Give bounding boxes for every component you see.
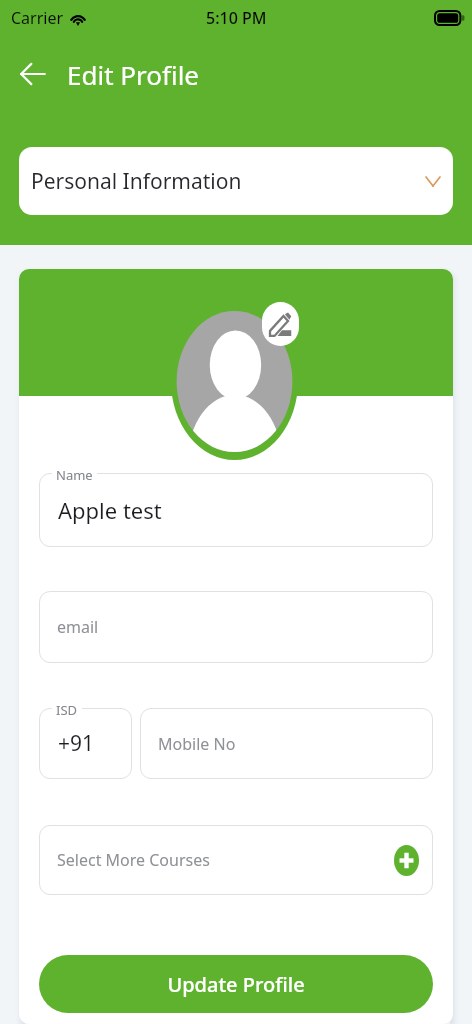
staticText: Personal Information (31, 167, 242, 196)
staticText: Edit Profile (67, 57, 200, 92)
staticText: +91 (58, 729, 95, 758)
button[interactable]: Personal Information (19, 147, 453, 215)
staticText: ISD (56, 701, 78, 719)
button[interactable]: Update Profile (39, 955, 433, 1013)
button[interactable]: Edit profile photo (262, 302, 299, 346)
button[interactable]: Apple test (39, 473, 433, 547)
button[interactable]: Back (9, 50, 57, 98)
button[interactable]: Mobile No (140, 708, 433, 779)
staticText: Apple test (58, 495, 162, 525)
staticText: Mobile No (158, 733, 236, 755)
button[interactable]: Select More Courses (39, 825, 433, 895)
staticText: Name (56, 466, 93, 484)
staticText: Carrier (11, 7, 64, 29)
staticText: 5:10 PM (206, 7, 267, 29)
staticText: Update Profile (167, 971, 305, 998)
staticText: Select More Courses (57, 849, 210, 871)
button[interactable]: email (39, 591, 433, 663)
button[interactable]: +91 (39, 708, 132, 779)
staticText: email (57, 616, 99, 638)
